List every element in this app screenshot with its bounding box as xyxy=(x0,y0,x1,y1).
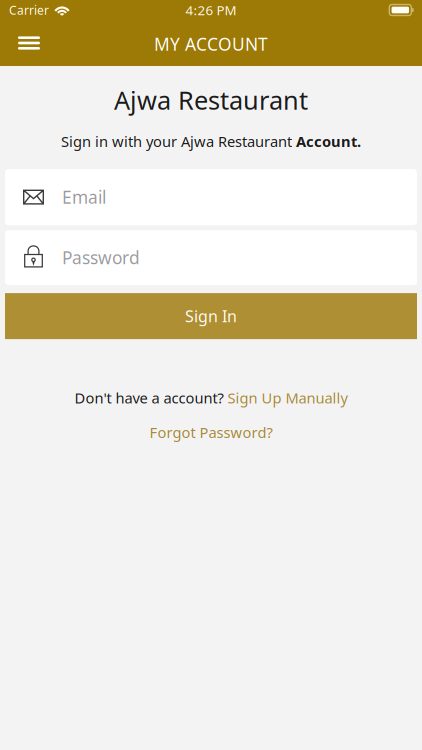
button[interactable]: Sign In xyxy=(0,293,422,339)
button[interactable]: Menu xyxy=(0,22,52,64)
staticText: Carrier xyxy=(9,2,49,18)
staticText: Password xyxy=(62,246,140,269)
staticText: Sign Up Manually xyxy=(227,388,347,408)
staticText: Sign In xyxy=(185,305,237,327)
staticText: MY ACCOUNT xyxy=(154,32,268,55)
staticText: Email xyxy=(62,186,106,209)
staticText: Account. xyxy=(296,132,361,151)
staticText: Don't have a account? xyxy=(74,388,227,408)
button[interactable]: Sign Up Manually xyxy=(227,388,347,408)
staticText: Sign in with your Ajwa Restaurant xyxy=(61,132,296,151)
staticText: Ajwa Restaurant xyxy=(114,83,308,117)
button[interactable]: Forgot Password? xyxy=(149,423,272,442)
staticText: 4:26 PM xyxy=(185,1,236,19)
staticText: Forgot Password? xyxy=(149,423,272,442)
